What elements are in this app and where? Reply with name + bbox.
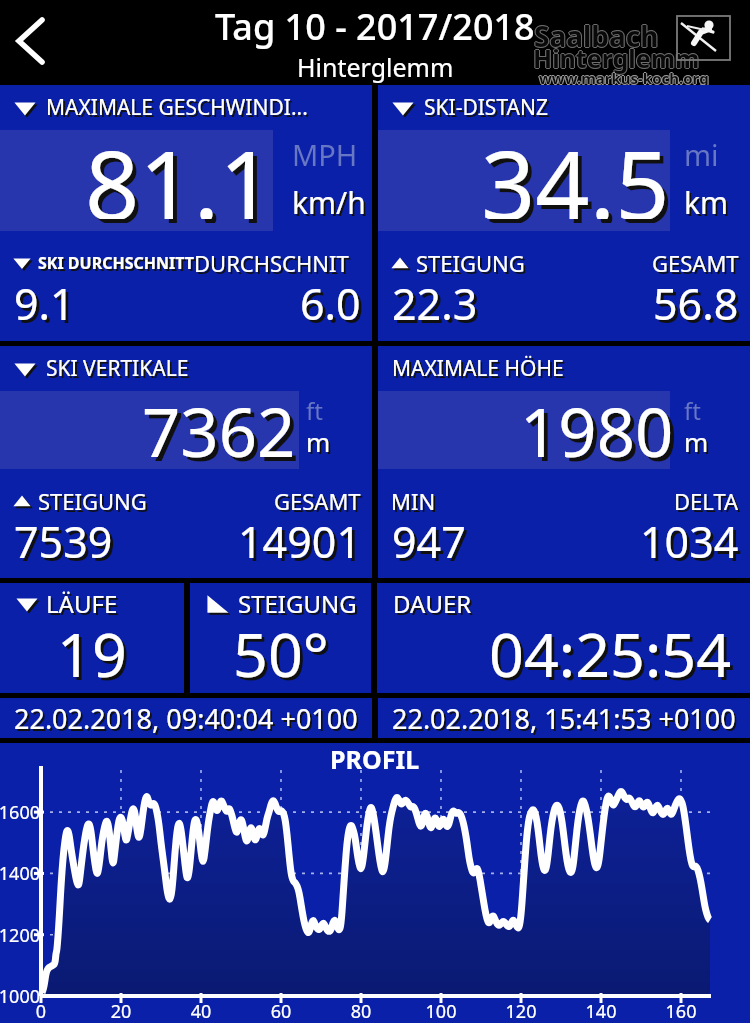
button[interactable]: MAXIMALE HÖHE bbox=[378, 346, 750, 578]
staticText: www.markus-koch.org bbox=[540, 68, 710, 88]
staticText: SKI DURCHSCHNITT bbox=[38, 252, 194, 274]
staticText: GESAMT bbox=[276, 488, 363, 518]
staticText: www.markus-koch.org bbox=[538, 68, 708, 88]
staticText: 1000 bbox=[0, 984, 40, 1009]
staticText: STEIGUNG bbox=[416, 248, 525, 278]
staticText: MAXIMALE HÖHE bbox=[392, 354, 564, 383]
staticText: km/h bbox=[292, 182, 366, 223]
staticText: DAUER bbox=[393, 587, 472, 620]
staticText: 140 bbox=[571, 999, 631, 1023]
staticText: 14901 bbox=[238, 512, 361, 571]
staticText: Saalbach bbox=[534, 17, 659, 55]
staticText: SKI VERTIKALE bbox=[48, 356, 191, 385]
staticText: STEIGUNG bbox=[240, 589, 359, 622]
staticText: Hinterglemm bbox=[534, 41, 701, 75]
staticText: km/h bbox=[294, 184, 368, 225]
staticText: Hinterglemm bbox=[533, 42, 700, 76]
staticText: 34.5 bbox=[481, 118, 670, 219]
staticText: 34.5 bbox=[485, 122, 674, 223]
staticText: 40 bbox=[171, 999, 231, 1023]
staticText: 6.0 bbox=[300, 274, 361, 333]
staticText: 22.02.2018, 09:40:04 +0100 bbox=[16, 702, 360, 739]
staticText: LÄUFE bbox=[46, 587, 118, 620]
staticText: 22.02.2018, 09:40:04 +0100 bbox=[14, 700, 358, 737]
staticText: STEIGUNG bbox=[40, 488, 149, 518]
staticText: Saalbach bbox=[534, 16, 659, 54]
staticText: SKI-DISTANZ bbox=[426, 95, 550, 124]
staticText: MIN bbox=[393, 488, 438, 518]
staticText: Hinterglemm bbox=[297, 50, 454, 84]
staticText: DAUER bbox=[395, 589, 474, 622]
button[interactable]: SKI-DISTANZ bbox=[378, 85, 750, 341]
staticText: 947 bbox=[392, 512, 466, 571]
staticText: 22.02.2018, 15:41:53 +0100 bbox=[392, 700, 736, 737]
staticText: 947 bbox=[395, 515, 469, 574]
staticText: 1400 bbox=[0, 861, 40, 886]
button[interactable]: Back bbox=[0, 0, 60, 82]
staticText: 100 bbox=[411, 999, 471, 1023]
staticText: DELTA bbox=[676, 488, 741, 518]
staticText: 6.0 bbox=[303, 277, 364, 336]
button[interactable]: DAUER bbox=[377, 583, 750, 693]
button[interactable]: MAXIMALE GESCHWINDI... bbox=[0, 85, 372, 341]
staticText: 7362 bbox=[146, 389, 300, 467]
staticText: m bbox=[686, 426, 711, 461]
button[interactable]: 22.02.2018, 15:41:53 +0100 bbox=[378, 698, 750, 738]
staticText: MIN bbox=[391, 486, 436, 516]
staticText: 1200 bbox=[0, 923, 40, 948]
staticText: 56.8 bbox=[653, 274, 739, 333]
staticText: MAXIMALE HÖHE bbox=[394, 356, 566, 385]
staticText: 04:25:54 bbox=[492, 615, 735, 684]
staticText: PROFIL bbox=[330, 742, 420, 770]
button[interactable]: LÄUFE bbox=[0, 583, 184, 693]
staticText: GESAMT bbox=[652, 248, 739, 278]
staticText: MAXIMALE GESCHWINDI... bbox=[46, 93, 308, 122]
staticText: 9.1 bbox=[14, 274, 75, 333]
staticText: SKI-DISTANZ bbox=[424, 93, 548, 122]
staticText: Hinterglemm bbox=[533, 40, 700, 74]
button[interactable]: SKI VERTIKALE bbox=[0, 346, 372, 578]
staticText: 50° bbox=[233, 612, 329, 681]
staticText: DURCHSCHNITT bbox=[196, 250, 363, 280]
staticText: mi bbox=[684, 135, 719, 174]
staticText: Saalbach bbox=[535, 17, 660, 55]
staticText: STEIGUNG bbox=[418, 250, 527, 280]
staticText: www.markus-koch.org bbox=[539, 68, 709, 88]
staticText: www.markus-koch.org bbox=[539, 69, 709, 89]
staticText: www.markus-koch.org bbox=[539, 67, 709, 87]
staticText: 1980 bbox=[524, 389, 678, 467]
staticText: 81.1 bbox=[89, 122, 278, 223]
staticText: 19 bbox=[57, 612, 127, 681]
button[interactable]: STEIGUNG bbox=[190, 583, 371, 693]
staticText: 20 bbox=[91, 999, 151, 1023]
staticText: 120 bbox=[491, 999, 551, 1023]
staticText: km bbox=[686, 184, 731, 225]
staticText: Saalbach bbox=[533, 17, 658, 55]
staticText: 81.1 bbox=[85, 118, 274, 219]
staticText: 22.3 bbox=[395, 277, 481, 336]
staticText: SKI DURCHSCHNITT bbox=[40, 254, 196, 276]
staticText: 14901 bbox=[241, 515, 364, 574]
staticText: 1034 bbox=[643, 515, 742, 574]
staticText: Hinterglemm bbox=[532, 41, 699, 75]
staticText: GESAMT bbox=[654, 250, 741, 280]
staticText: 22.02.2018, 15:41:53 +0100 bbox=[394, 702, 738, 739]
staticText: m bbox=[308, 426, 333, 461]
staticText: km bbox=[684, 182, 729, 223]
staticText: 160 bbox=[651, 999, 711, 1023]
button[interactable]: 22.02.2018, 09:40:04 +0100 bbox=[0, 698, 372, 738]
staticText: 22.3 bbox=[392, 274, 478, 333]
staticText: Hinterglemm bbox=[533, 41, 700, 75]
staticText: ft bbox=[306, 394, 323, 427]
staticText: 7539 bbox=[14, 512, 113, 571]
staticText: 1600 bbox=[0, 800, 40, 825]
staticText: GESAMT bbox=[274, 486, 361, 516]
staticText: DURCHSCHNITT bbox=[194, 248, 361, 278]
staticText: DELTA bbox=[674, 486, 739, 516]
staticText: LÄUFE bbox=[48, 589, 120, 622]
staticText: Tag 10 - 2017/2018 bbox=[215, 2, 535, 51]
staticText: 80 bbox=[331, 999, 391, 1023]
staticText: MAXIMALE GESCHWINDI... bbox=[48, 95, 310, 124]
staticText: m bbox=[306, 424, 331, 459]
staticText: 04:25:54 bbox=[489, 612, 732, 681]
